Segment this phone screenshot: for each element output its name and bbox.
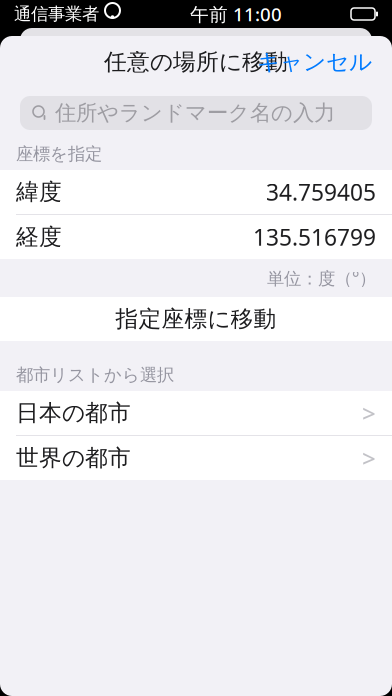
staticText: 都市リストから選択: [16, 364, 174, 386]
staticText: 緯度: [16, 178, 62, 206]
staticText: >: [362, 397, 376, 429]
staticText: 単位：度（°）: [267, 266, 376, 289]
staticText: 任意の場所に移動: [104, 48, 288, 76]
staticText: 34.759405: [266, 177, 376, 207]
staticText: 135.516799: [253, 222, 376, 252]
staticText: 世界の都市: [16, 444, 131, 472]
button[interactable]: 経度: [0, 215, 392, 259]
button[interactable]: キャンセル: [245, 40, 384, 84]
button[interactable]: 緯度: [0, 170, 392, 214]
button[interactable]: 住所やランドマーク名の入力: [20, 96, 372, 130]
button[interactable]: 日本の都市: [0, 391, 392, 435]
button[interactable]: 指定座標に移動: [0, 297, 392, 341]
staticText: 指定座標に移動: [115, 305, 276, 333]
staticText: 午前 11:00: [190, 2, 282, 26]
staticText: 住所やランドマーク名の入力: [55, 100, 335, 126]
staticText: 通信事業者: [14, 3, 99, 25]
staticText: 日本の都市: [16, 399, 131, 427]
staticText: 座標を指定: [16, 143, 102, 165]
staticText: >: [362, 442, 376, 474]
staticText: 経度: [16, 223, 62, 251]
staticText: キャンセル: [257, 48, 372, 76]
button[interactable]: 世界の都市: [0, 436, 392, 480]
